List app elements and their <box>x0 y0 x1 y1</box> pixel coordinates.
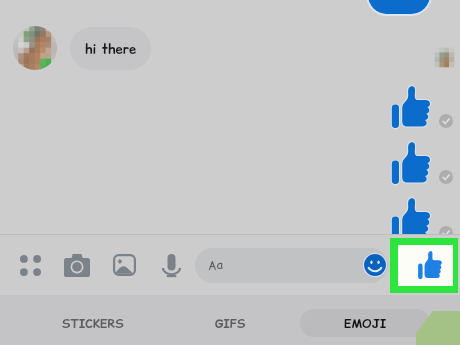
button[interactable]: Voice message <box>149 243 193 287</box>
staticText: hi there <box>85 40 137 58</box>
button[interactable]: GIFS <box>195 309 265 337</box>
button[interactable]: Like <box>390 198 432 240</box>
staticText: Aa <box>208 256 223 273</box>
button[interactable] <box>368 0 430 14</box>
button[interactable]: STICKERS <box>45 309 141 337</box>
button[interactable]: EMOJI <box>300 309 430 337</box>
button[interactable]: Emoji <box>363 253 387 277</box>
button[interactable]: Gallery <box>102 243 146 287</box>
button[interactable]: hi there <box>70 27 151 70</box>
staticText: GIFS <box>215 315 246 332</box>
button[interactable]: More options <box>8 243 52 287</box>
staticText: EMOJI <box>344 315 387 332</box>
button[interactable]: Aa <box>195 248 388 283</box>
staticText: STICKERS <box>62 315 124 332</box>
button[interactable]: Send like <box>398 245 453 286</box>
button[interactable]: Like <box>390 86 432 128</box>
button[interactable]: Like <box>390 142 432 184</box>
button[interactable]: Camera <box>55 243 99 287</box>
